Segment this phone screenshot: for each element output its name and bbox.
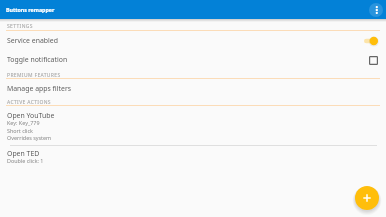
button[interactable]: Add action: [355, 186, 379, 210]
staticText: Open TED: [7, 149, 40, 158]
staticText: ACTIVE ACTIONS: [7, 99, 51, 106]
staticText: Short click: [7, 127, 33, 134]
staticText: Buttons remapper: [6, 6, 55, 13]
button[interactable]: Open TED: [0, 146, 386, 170]
staticText: Manage apps filters: [7, 84, 72, 93]
button[interactable]: Service enabled: [0, 32, 386, 49]
staticText: Service enabled: [7, 36, 364, 45]
button[interactable]: Open YouTube: [0, 106, 386, 145]
staticText: Key: Key_779: [7, 119, 40, 126]
staticText: Double click: 1: [7, 157, 44, 164]
button[interactable]: Toggle notification: [0, 51, 386, 68]
staticText: Toggle notification: [7, 55, 369, 64]
staticText: SETTINGS: [7, 23, 33, 30]
staticText: Overrides system: [7, 134, 52, 141]
button[interactable]: More options: [369, 3, 383, 17]
staticText: Open YouTube: [7, 111, 55, 120]
staticText: PREMIUM FEATURES: [7, 72, 61, 79]
button[interactable]: Manage apps filters: [0, 81, 386, 96]
